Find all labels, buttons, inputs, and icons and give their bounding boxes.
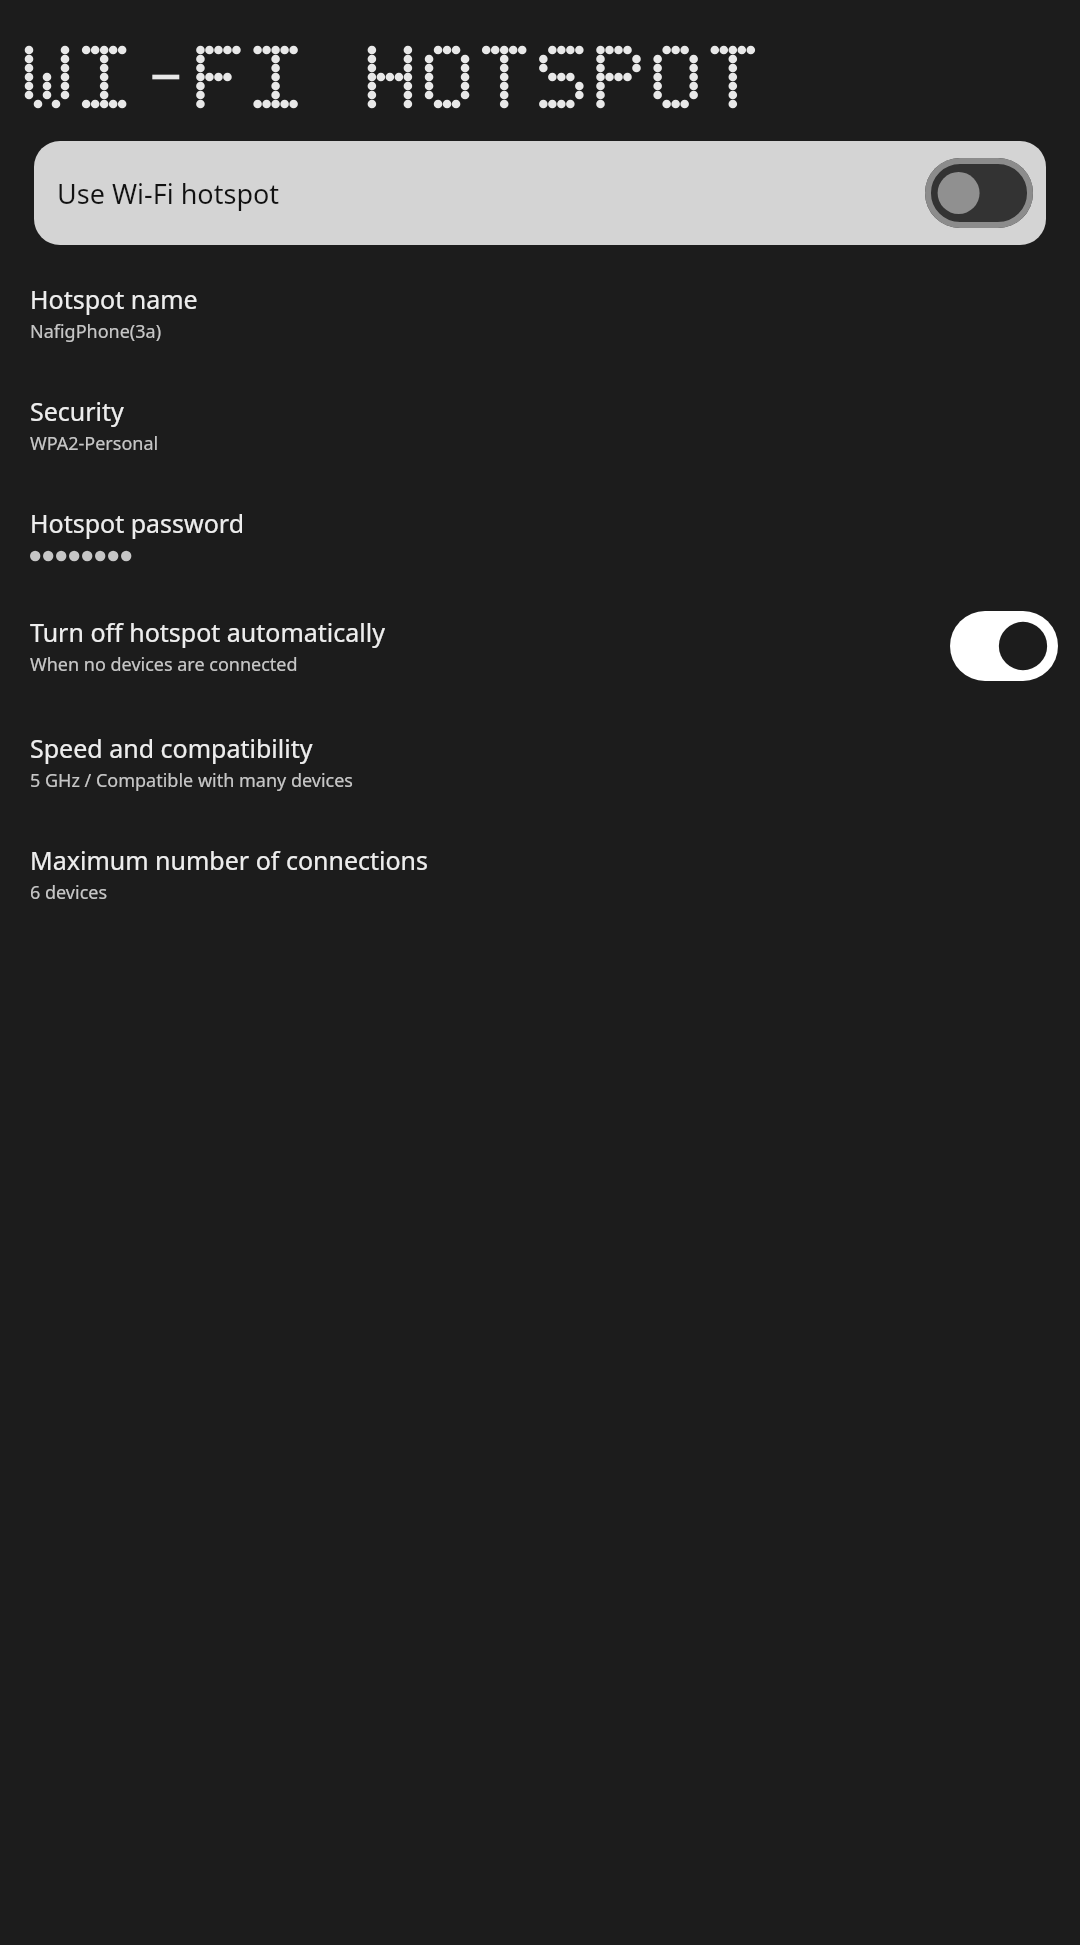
staticText: Security: [30, 394, 124, 428]
button[interactable]: Speed and compatibility: [0, 685, 1080, 797]
staticText: WPA2-Personal: [30, 431, 159, 456]
staticText: Hotspot name: [30, 282, 198, 316]
staticText: Speed and compatibility: [30, 731, 313, 765]
button[interactable]: Hotspot password: [0, 460, 1080, 571]
staticText: Use Wi-Fi hotspot: [57, 175, 925, 212]
button[interactable]: Use Wi-Fi hotspot: [34, 141, 1046, 245]
button[interactable]: Turn off hotspot automatically: [0, 571, 1080, 685]
button[interactable]: Security: [0, 348, 1080, 460]
staticText: 6 devices: [30, 880, 108, 905]
staticText: Turn off hotspot automatically: [30, 615, 385, 649]
button[interactable]: Turn off hotspot automatically, on: [950, 611, 1058, 681]
staticText: Maximum number of connections: [30, 843, 429, 877]
staticText: NafigPhone(3a): [30, 319, 162, 344]
staticText: Hotspot password: [30, 506, 245, 540]
button[interactable]: Use Wi-Fi hotspot, off: [925, 158, 1033, 228]
staticText: 5 GHz / Compatible with many devices: [30, 768, 353, 793]
button[interactable]: Maximum number of connections: [0, 797, 1080, 909]
button[interactable]: Hotspot name: [0, 282, 1080, 348]
staticText: When no devices are connected: [30, 652, 298, 677]
